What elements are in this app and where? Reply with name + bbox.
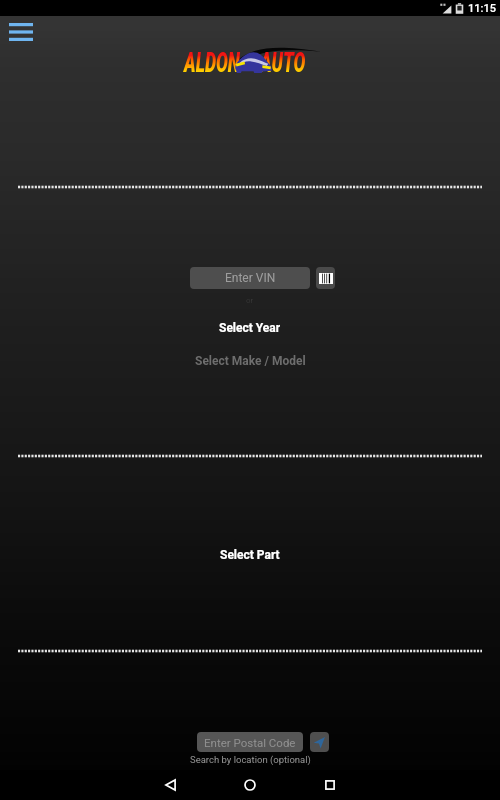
button[interactable]: Open navigation menu [1,19,41,45]
button[interactable]: Scan VIN barcode [316,267,335,289]
staticText: 11:15 [468,2,496,15]
staticText: Select Part [220,548,280,562]
staticText: Enter Postal Code [204,736,296,749]
button[interactable]: Select Part [214,547,286,563]
button[interactable]: Select Make / Model [189,353,312,369]
button[interactable]: Select Year [213,320,287,336]
staticText: AUTO [260,46,305,79]
staticText: Enter VIN [225,271,276,285]
staticText: ALDON [184,46,240,79]
staticText: Select Year [219,321,281,335]
button[interactable]: Back [150,770,190,800]
button[interactable]: Enter VIN [190,267,310,289]
button[interactable]: Enter Postal Code [197,732,303,752]
button[interactable]: Home [230,770,270,800]
staticText: or [246,296,254,305]
staticText: AUTO [260,46,305,79]
button[interactable]: Recent apps [310,770,350,800]
staticText: Select Make / Model [195,354,306,368]
staticText: ALDON [184,46,240,79]
staticText: Search by location (optional) [190,754,311,765]
button[interactable]: Use my current location [310,732,329,752]
